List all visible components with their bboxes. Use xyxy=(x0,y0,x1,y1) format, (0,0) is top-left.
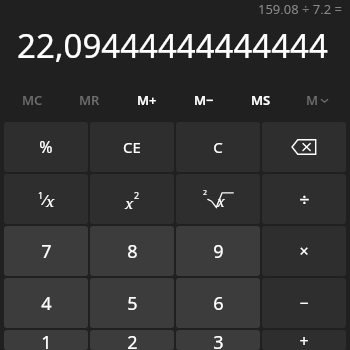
button[interactable]: 4 xyxy=(4,278,88,328)
button[interactable]: 3 xyxy=(176,330,260,350)
staticText: 5 xyxy=(127,291,138,316)
button[interactable]: × xyxy=(262,226,346,276)
staticText: x xyxy=(217,192,225,211)
staticText: 7 xyxy=(41,239,52,264)
button[interactable]: C xyxy=(176,122,260,172)
button[interactable]: Backspace xyxy=(262,122,346,172)
button[interactable]: 1 xyxy=(4,330,88,350)
staticText: × xyxy=(299,240,309,262)
staticText: x xyxy=(125,193,134,213)
staticText: + xyxy=(299,330,309,350)
staticText: MC xyxy=(22,91,43,109)
button[interactable]: 5 xyxy=(90,278,174,328)
button[interactable]: 2 xyxy=(90,330,174,350)
button[interactable]: M− xyxy=(175,88,232,112)
button[interactable]: MC xyxy=(4,88,61,112)
button[interactable]: MS xyxy=(232,88,289,112)
staticText: % xyxy=(39,136,53,158)
staticText: M+ xyxy=(137,91,157,109)
staticText: M xyxy=(306,91,319,109)
staticText: MR xyxy=(79,91,100,109)
staticText: 2 xyxy=(134,189,140,201)
staticText: 6 xyxy=(213,291,224,316)
button[interactable]: + xyxy=(262,330,346,350)
staticText: 2 xyxy=(127,330,138,350)
staticText: 9 xyxy=(213,239,224,264)
button[interactable]: % xyxy=(4,122,88,172)
button[interactable]: M+ xyxy=(118,88,175,112)
staticText: 2 xyxy=(203,188,208,198)
staticText: 8 xyxy=(127,239,138,264)
button[interactable]: 9 xyxy=(176,226,260,276)
button[interactable]: x squared xyxy=(90,174,174,224)
staticText: MS xyxy=(251,91,271,109)
staticText: ÷ xyxy=(299,187,310,212)
staticText: x xyxy=(46,191,55,211)
button[interactable]: CE xyxy=(90,122,174,172)
button[interactable]: One over x xyxy=(4,174,88,224)
button[interactable]: M xyxy=(289,88,346,112)
staticText: C xyxy=(213,137,223,157)
staticText: CE xyxy=(123,137,141,157)
button[interactable]: MR xyxy=(61,88,118,112)
staticText: 22,09444444444444 xyxy=(17,23,328,68)
staticText: 1 xyxy=(41,330,52,350)
staticText: ⁄ xyxy=(44,189,46,209)
button[interactable]: − xyxy=(262,278,346,328)
button[interactable]: ÷ xyxy=(262,174,346,224)
staticText: − xyxy=(299,292,309,314)
button[interactable]: 7 xyxy=(4,226,88,276)
button[interactable]: 8 xyxy=(90,226,174,276)
button[interactable]: Square root xyxy=(176,174,260,224)
staticText: 159,08 ÷ 7,2 = xyxy=(258,0,343,14)
staticText: 4 xyxy=(41,291,52,316)
staticText: 3 xyxy=(213,330,224,350)
button[interactable]: 6 xyxy=(176,278,260,328)
staticText: M− xyxy=(194,91,214,109)
staticText: 1 xyxy=(38,189,44,201)
